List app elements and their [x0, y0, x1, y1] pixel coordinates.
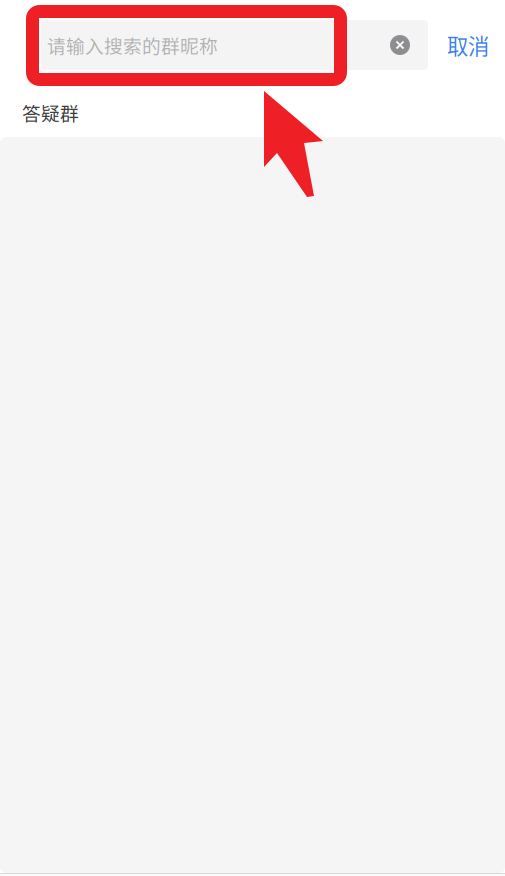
- button[interactable]: 取消: [447, 20, 489, 70]
- staticText: 取消: [447, 30, 489, 60]
- button[interactable]: Clear search text: [372, 20, 428, 70]
- staticText: 请输入搜索的群昵称: [47, 31, 218, 58]
- staticText: 答疑群: [22, 99, 79, 126]
